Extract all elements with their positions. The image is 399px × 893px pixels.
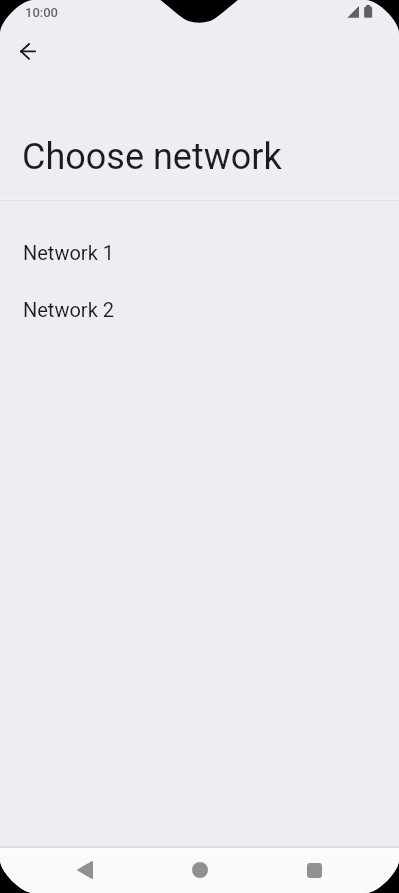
button[interactable]: Network 2 — [0, 281, 399, 338]
button[interactable]: Back — [60, 849, 109, 890]
button[interactable]: Network 1 — [0, 224, 399, 281]
staticText: Network 1 — [23, 241, 114, 264]
staticText: Choose network — [22, 136, 282, 178]
button[interactable]: Home — [175, 849, 224, 890]
staticText: 10:00 — [25, 5, 58, 20]
staticText: Network 2 — [23, 298, 114, 321]
button[interactable]: Recent apps — [290, 849, 339, 890]
button[interactable]: Navigate up — [4, 27, 52, 75]
